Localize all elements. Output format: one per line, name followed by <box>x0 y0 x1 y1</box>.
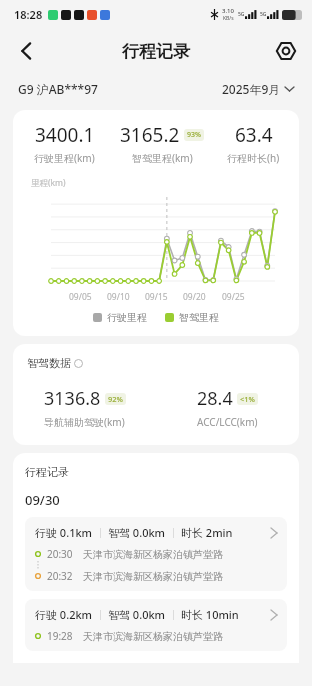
staticText: 5G <box>238 11 245 18</box>
staticText: 3165.2 <box>120 122 180 148</box>
button[interactable]: 2025年9月 <box>222 81 294 97</box>
staticText: 19:28 <box>47 629 73 643</box>
staticText: 行程时长(h) <box>227 151 280 165</box>
staticText: 行驶里程 <box>107 311 147 324</box>
staticText: 18:28 <box>14 7 43 22</box>
staticText: 时长 2min <box>181 525 233 540</box>
staticText: 2025年9月 <box>222 81 281 97</box>
staticText: KB/s <box>223 15 234 22</box>
button[interactable]: Back <box>8 33 44 69</box>
staticText: 天津市滨海新区杨家泊镇芦堂路 <box>83 630 223 643</box>
staticText: 智驾 0.0km <box>108 607 166 622</box>
staticText: 智驾里程 <box>179 311 219 324</box>
button[interactable]: 行驶 0.2km <box>25 599 287 651</box>
staticText: 里程(km) <box>31 177 66 189</box>
staticText: 28.4 <box>197 386 233 411</box>
staticText: 63.4 <box>235 122 273 148</box>
staticText: 5G <box>260 11 267 18</box>
staticText: 09/25 <box>222 291 245 303</box>
staticText: 时长 10min <box>181 607 239 622</box>
staticText: 智驾里程(km) <box>132 151 193 165</box>
staticText: ACC/LCC(km) <box>197 415 258 429</box>
staticText: <1% <box>240 394 255 404</box>
staticText: 93% <box>187 130 201 140</box>
staticText: 20:30 <box>47 547 73 561</box>
staticText: 行程记录 <box>25 465 69 479</box>
staticText: 行驶 0.1km <box>35 525 93 540</box>
staticText: 09/10 <box>107 291 130 303</box>
staticText: 智驾数据 <box>27 356 71 370</box>
staticText: 92% <box>108 394 123 404</box>
staticText: 行程记录 <box>122 41 190 62</box>
staticText: 3136.8 <box>44 386 101 411</box>
staticText: 行驶里程(km) <box>34 151 95 165</box>
staticText: 09/20 <box>183 291 206 303</box>
staticText: 天津市滨海新区杨家泊镇芦堂路 <box>83 548 223 561</box>
staticText: 行驶 0.2km <box>35 607 93 622</box>
staticText: 09/30 <box>25 491 60 509</box>
staticText: 3400.1 <box>35 122 95 148</box>
staticText: G9 沪AB***97 <box>18 81 98 97</box>
staticText: 09/05 <box>69 291 92 303</box>
staticText: 天津市滨海新区杨家泊镇芦堂路 <box>83 570 223 583</box>
staticText: 智驾 0.0km <box>108 525 166 540</box>
button[interactable]: Settings <box>268 33 304 69</box>
staticText: 导航辅助驾驶(km) <box>44 415 125 429</box>
staticText: 09/15 <box>145 291 168 303</box>
button[interactable]: 行驶 0.1km <box>25 517 287 591</box>
staticText: 20:32 <box>47 569 73 583</box>
staticText: 3.10 <box>222 7 234 15</box>
